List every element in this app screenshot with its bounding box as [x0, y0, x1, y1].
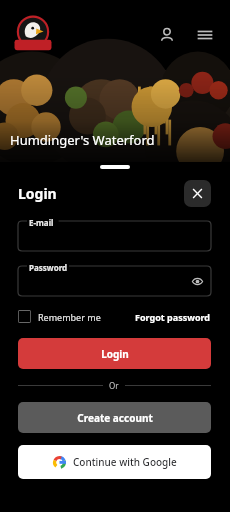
button[interactable]: Menu — [190, 20, 220, 50]
button[interactable]: Show password — [189, 273, 205, 289]
staticText: Humdinger's Waterford — [10, 131, 155, 149]
staticText: Password — [29, 262, 68, 273]
staticText: Or — [109, 380, 119, 391]
button[interactable]: Account — [152, 20, 182, 50]
button[interactable]: Close — [184, 180, 211, 207]
button[interactable]: Continue with Google — [18, 445, 211, 479]
staticText: Remember me — [38, 311, 101, 323]
staticText: Login — [18, 184, 57, 203]
button[interactable]: Login — [18, 338, 211, 369]
button[interactable]: Remember me — [18, 310, 101, 323]
button[interactable]: Forgot password — [135, 311, 211, 323]
staticText: Create account — [77, 411, 153, 425]
staticText: Forgot password — [135, 311, 211, 323]
staticText: Continue with Google — [73, 455, 177, 469]
button[interactable]: Humdinger's Takeaway logo — [12, 15, 54, 55]
button[interactable]: Create account — [18, 402, 211, 433]
staticText: Login — [101, 347, 129, 361]
staticText: E-mail — [29, 217, 54, 228]
